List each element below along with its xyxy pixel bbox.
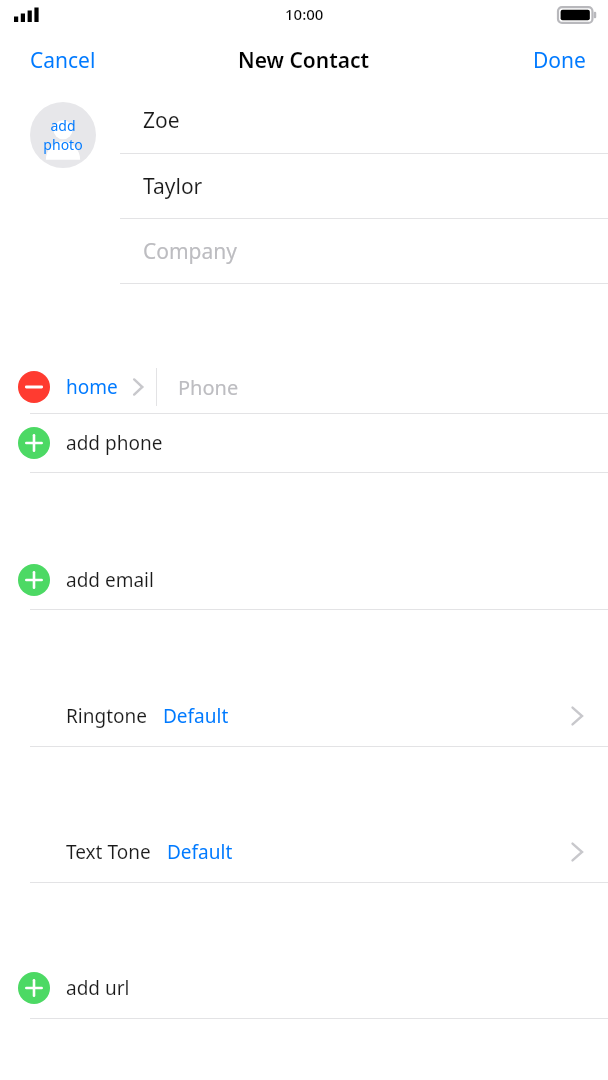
button[interactable]: Add photo [30,102,96,168]
button[interactable]: Done [511,38,608,83]
staticText: 10:00 [285,4,324,24]
button[interactable]: Text Tone [0,822,608,882]
button[interactable]: add phone [0,414,608,472]
staticText: Text Tone [66,839,151,865]
button[interactable]: add url [0,958,608,1018]
staticText: add phone [66,430,163,456]
staticText: Taylor [143,172,203,201]
staticText: Company [143,237,237,266]
staticText: add email [66,567,154,593]
button[interactable]: Remove phone [0,361,608,413]
staticText: home [66,374,118,400]
staticText: photo [43,135,83,154]
other: Remove phone [18,371,50,403]
staticText: Done [533,46,586,75]
staticText: Default [167,839,233,865]
staticText: Default [163,703,229,729]
button[interactable]: Company [0,219,608,283]
staticText: add [50,116,76,135]
button[interactable]: Taylor [0,154,608,218]
button[interactable]: Ringtone [0,686,608,746]
button[interactable]: add email [0,551,608,609]
staticText: Phone [178,374,239,401]
staticText: Zoe [143,106,180,135]
staticText: Ringtone [66,703,147,729]
staticText: add url [66,975,130,1001]
button[interactable]: Cancel [0,38,126,83]
staticText: Cancel [30,46,96,75]
staticText: New Contact [238,46,370,75]
button[interactable]: Zoe [0,88,608,153]
